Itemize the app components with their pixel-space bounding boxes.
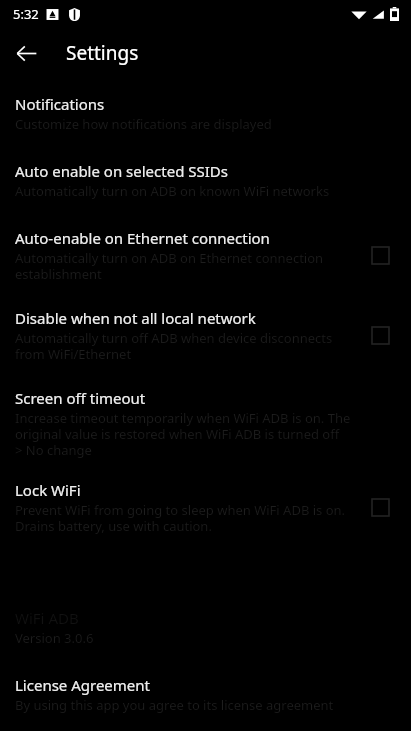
button[interactable]: License Agreement [0, 675, 411, 714]
staticText: By using this app you agree to its licen… [15, 696, 334, 714]
staticText: License Agreement [15, 675, 151, 695]
staticText: Settings [66, 40, 139, 66]
button[interactable]: Lock WiFi [0, 480, 411, 534]
staticText: Customize how notifications are displaye… [15, 115, 272, 133]
staticText: Version 3.0.6 [15, 629, 94, 647]
staticText: Notifications [15, 94, 105, 114]
staticText: Screen off timeout [15, 388, 146, 408]
staticText: Automatically turn on ADB on known WiFi … [15, 182, 330, 200]
button[interactable]: Screen off timeout [0, 388, 411, 458]
staticText: Automatically turn on ADB on Ethernet co… [15, 249, 353, 282]
button[interactable]: Back [8, 35, 44, 71]
staticText: Automatically turn off ADB when device d… [15, 329, 353, 362]
staticText: Lock WiFi [15, 480, 81, 500]
button[interactable]: Toggle Auto-enable on Ethernet connectio… [363, 238, 397, 272]
staticText: Disable when not all local network [15, 308, 256, 328]
button[interactable]: Auto-enable on Ethernet connection [0, 228, 411, 282]
button[interactable]: Toggle Disable when not all local networ… [363, 318, 397, 352]
staticText: Auto enable on selected SSIDs [15, 161, 228, 181]
button[interactable]: Auto enable on selected SSIDs [0, 161, 411, 200]
staticText: Prevent WiFi from going to sleep when Wi… [15, 501, 353, 534]
button[interactable]: Toggle Lock WiFi [363, 490, 397, 524]
staticText: Auto-enable on Ethernet connection [15, 228, 270, 248]
staticText: WiFi ADB [15, 608, 79, 628]
button[interactable]: Disable when not all local network [0, 308, 411, 362]
staticText: Increase timeout temporarily when WiFi A… [15, 409, 397, 458]
button[interactable]: Notifications [0, 94, 411, 133]
staticText: 5:32 [13, 5, 39, 23]
